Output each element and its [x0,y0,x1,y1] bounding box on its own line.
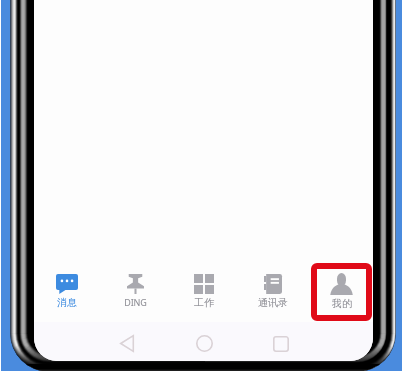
button[interactable]: Back [107,324,147,361]
staticText: DING [124,296,147,308]
staticText: 我的 [332,297,352,310]
staticText: 消息 [57,296,77,309]
button[interactable]: 消息 [34,266,101,322]
button[interactable]: Home [184,324,224,361]
button[interactable]: 工作 [169,266,237,322]
button[interactable]: 通讯录 [237,266,305,322]
button[interactable]: DING [101,266,169,322]
staticText: 工作 [194,296,214,309]
button[interactable]: Recents [261,324,301,361]
button[interactable]: 我的 [305,266,373,322]
staticText: 通讯录 [258,296,288,309]
